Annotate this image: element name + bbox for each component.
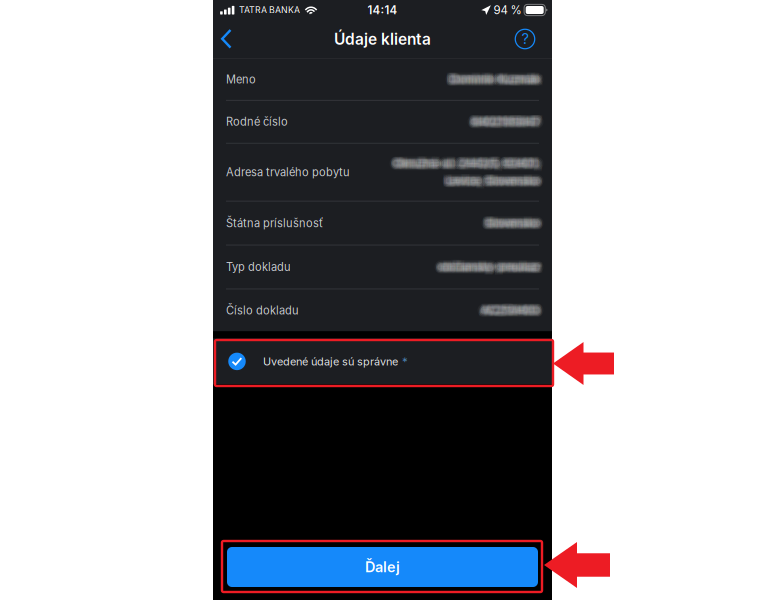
staticText: Dominik <box>450 74 494 87</box>
staticText: Okružná <box>392 157 436 170</box>
staticText: Dominik <box>446 71 490 84</box>
staticText: Slovensko <box>488 176 542 189</box>
staticText: Okružná <box>393 157 437 170</box>
staticText: Slovensko <box>485 173 539 187</box>
staticText: 93401, <box>506 155 542 168</box>
staticText: 8402195847 <box>472 116 539 129</box>
staticText: Kuzmák <box>499 71 541 84</box>
staticText: Dominik <box>451 71 495 84</box>
staticText: 2443/5, <box>462 155 503 168</box>
staticText: 2443/5, <box>461 156 502 169</box>
staticText: Dominik <box>452 74 496 88</box>
staticText: 2443/5, <box>458 159 499 172</box>
staticText: Dominik <box>450 72 494 85</box>
staticText: Dominik <box>446 72 490 85</box>
staticText: Levice, <box>447 173 483 187</box>
staticText: 93401, <box>504 156 540 169</box>
staticText: 8402195847 <box>469 116 536 129</box>
staticText: AC259493 <box>483 304 540 317</box>
staticText: preukaz <box>497 262 539 275</box>
staticText: Okružná <box>398 156 442 169</box>
staticText: 2443/5, <box>457 156 498 169</box>
staticText: 8402195847 <box>468 113 535 127</box>
staticText: Okružná <box>390 155 434 168</box>
staticText: Slovensko <box>485 218 539 232</box>
staticText: Okružná <box>395 159 439 172</box>
staticText: 8402195847 <box>475 114 542 128</box>
staticText: 93401, <box>505 156 541 169</box>
staticText: ul. <box>440 156 453 169</box>
staticText: občiansky <box>437 259 491 273</box>
staticText: 2443/5, <box>463 158 504 171</box>
staticText: občiansky <box>439 261 493 275</box>
staticText: 2443/5, <box>459 155 500 168</box>
staticText: 2443/5, <box>455 159 496 172</box>
staticText: ul. <box>441 158 454 171</box>
button[interactable]: Back <box>213 20 255 58</box>
staticText: AC259493 <box>478 304 535 317</box>
staticText: 93401, <box>503 155 539 168</box>
staticText: občiansky <box>436 260 490 274</box>
staticText: preukaz <box>500 259 542 273</box>
staticText: Okružná <box>392 155 436 168</box>
staticText: Slovensko <box>488 216 542 230</box>
staticText: Slovensko <box>485 176 539 189</box>
staticText: Uvedené údaje sú správne <box>263 355 398 368</box>
staticText: preukaz <box>497 258 539 272</box>
staticText: občiansky <box>442 261 496 275</box>
staticText: Kuzmák <box>497 72 539 85</box>
staticText: občiansky <box>437 261 491 275</box>
staticText: 8402195847 <box>474 117 541 130</box>
staticText: Kuzmák <box>495 72 537 85</box>
staticText: 93401, <box>506 156 542 169</box>
staticText: AC259493 <box>483 305 540 318</box>
staticText: AC259493 <box>482 303 539 316</box>
staticText: 2443/5, <box>462 159 503 172</box>
staticText: 93401, <box>500 157 536 170</box>
staticText: 93401, <box>504 158 540 171</box>
staticText: Kuzmák <box>500 72 542 85</box>
staticText: Dominik <box>450 74 494 88</box>
staticText: Kuzmák <box>494 74 536 87</box>
staticText: preukaz <box>500 262 542 275</box>
staticText: Slovensko <box>489 176 543 189</box>
staticText: Slovensko <box>484 217 538 231</box>
staticText: 93401, <box>501 157 537 170</box>
staticText: Dominik <box>447 72 491 85</box>
staticText: Dominik <box>449 71 493 84</box>
button[interactable]: Ďalej <box>227 547 538 587</box>
staticText: ul. <box>442 157 455 170</box>
staticText: preukaz <box>495 258 537 272</box>
staticText: Dominik <box>448 74 492 88</box>
staticText: Dominik <box>446 74 490 87</box>
staticText: ul. <box>440 159 453 172</box>
staticText: Kuzmák <box>496 74 538 88</box>
staticText: Slovensko <box>485 215 539 228</box>
staticText: AC259493 <box>483 303 540 316</box>
staticText: Kuzmák <box>495 74 537 87</box>
staticText: Okružná <box>391 159 435 172</box>
button[interactable]: Uvedené údaje sú správne <box>213 338 552 384</box>
staticText: Kuzmák <box>494 74 536 88</box>
button[interactable]: Help <box>503 20 552 58</box>
staticText: AC259493 <box>480 302 537 315</box>
staticText: Dominik <box>453 74 497 88</box>
staticText: 2443/5, <box>459 158 500 171</box>
staticText: Levice, <box>449 173 485 187</box>
staticText: Okružná <box>393 156 437 169</box>
staticText: Kuzmák <box>497 74 539 88</box>
staticText: Slovensko <box>485 173 539 187</box>
staticText: AC259493 <box>478 302 535 315</box>
staticText: Dominik <box>447 74 491 87</box>
staticText: Slovensko <box>482 174 536 188</box>
staticText: 93401, <box>502 157 538 170</box>
staticText: Slovensko <box>482 217 536 231</box>
staticText: 93401, <box>500 159 536 172</box>
staticText: Slovensko <box>484 173 538 187</box>
staticText: 94 % <box>494 3 522 17</box>
staticText: preukaz <box>499 260 541 274</box>
staticText: Slovensko <box>483 172 537 186</box>
staticText: občiansky <box>438 259 492 273</box>
staticText: 93401, <box>501 156 537 169</box>
staticText: Kuzmák <box>498 72 540 85</box>
